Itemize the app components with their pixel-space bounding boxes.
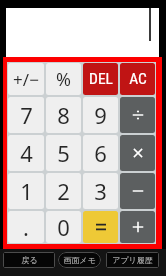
staticText: AC <box>129 70 147 88</box>
staticText: 3 <box>94 176 107 206</box>
button[interactable]: Add <box>120 211 155 243</box>
staticText: +/− <box>13 68 39 91</box>
staticText: DEL <box>89 70 113 88</box>
staticText: 戻る <box>21 255 38 265</box>
button[interactable]: . <box>8 211 44 243</box>
button[interactable]: DEL <box>83 63 118 95</box>
button[interactable]: +/− <box>8 63 44 95</box>
button[interactable]: Divide <box>120 97 155 133</box>
staticText: 画面メモ <box>63 255 96 265</box>
staticText: 2 <box>57 176 70 206</box>
button[interactable]: Subtract <box>120 173 155 209</box>
button[interactable]: 5 <box>46 135 81 171</box>
staticText: 8 <box>57 100 70 130</box>
button[interactable]: Multiply <box>120 135 155 171</box>
staticText: 4 <box>20 138 33 168</box>
button[interactable]: AC <box>120 63 155 95</box>
staticText: 6 <box>94 138 107 168</box>
staticText: 0 <box>57 212 70 242</box>
staticText: % <box>56 67 71 92</box>
button[interactable]: アプリ履歴 <box>106 252 159 268</box>
button[interactable]: 6 <box>83 135 118 171</box>
button[interactable]: 画面メモ <box>58 252 101 268</box>
staticText: . <box>23 212 29 242</box>
button[interactable]: 7 <box>8 97 44 133</box>
button[interactable]: 戻る <box>3 252 55 268</box>
staticText: 1 <box>20 176 33 206</box>
button[interactable]: 2 <box>46 173 81 209</box>
staticText: 7 <box>20 100 33 130</box>
button[interactable]: 4 <box>8 135 44 171</box>
button[interactable]: 1 <box>8 173 44 209</box>
button[interactable]: 9 <box>83 97 118 133</box>
button[interactable]: % <box>46 63 81 95</box>
staticText: 9 <box>94 100 107 130</box>
button[interactable]: 3 <box>83 173 118 209</box>
staticText: アプリ履歴 <box>112 255 153 265</box>
button[interactable]: 0 <box>46 211 81 243</box>
button[interactable]: 8 <box>46 97 81 133</box>
staticText: 5 <box>57 138 70 168</box>
button[interactable]: Equals <box>83 211 118 243</box>
